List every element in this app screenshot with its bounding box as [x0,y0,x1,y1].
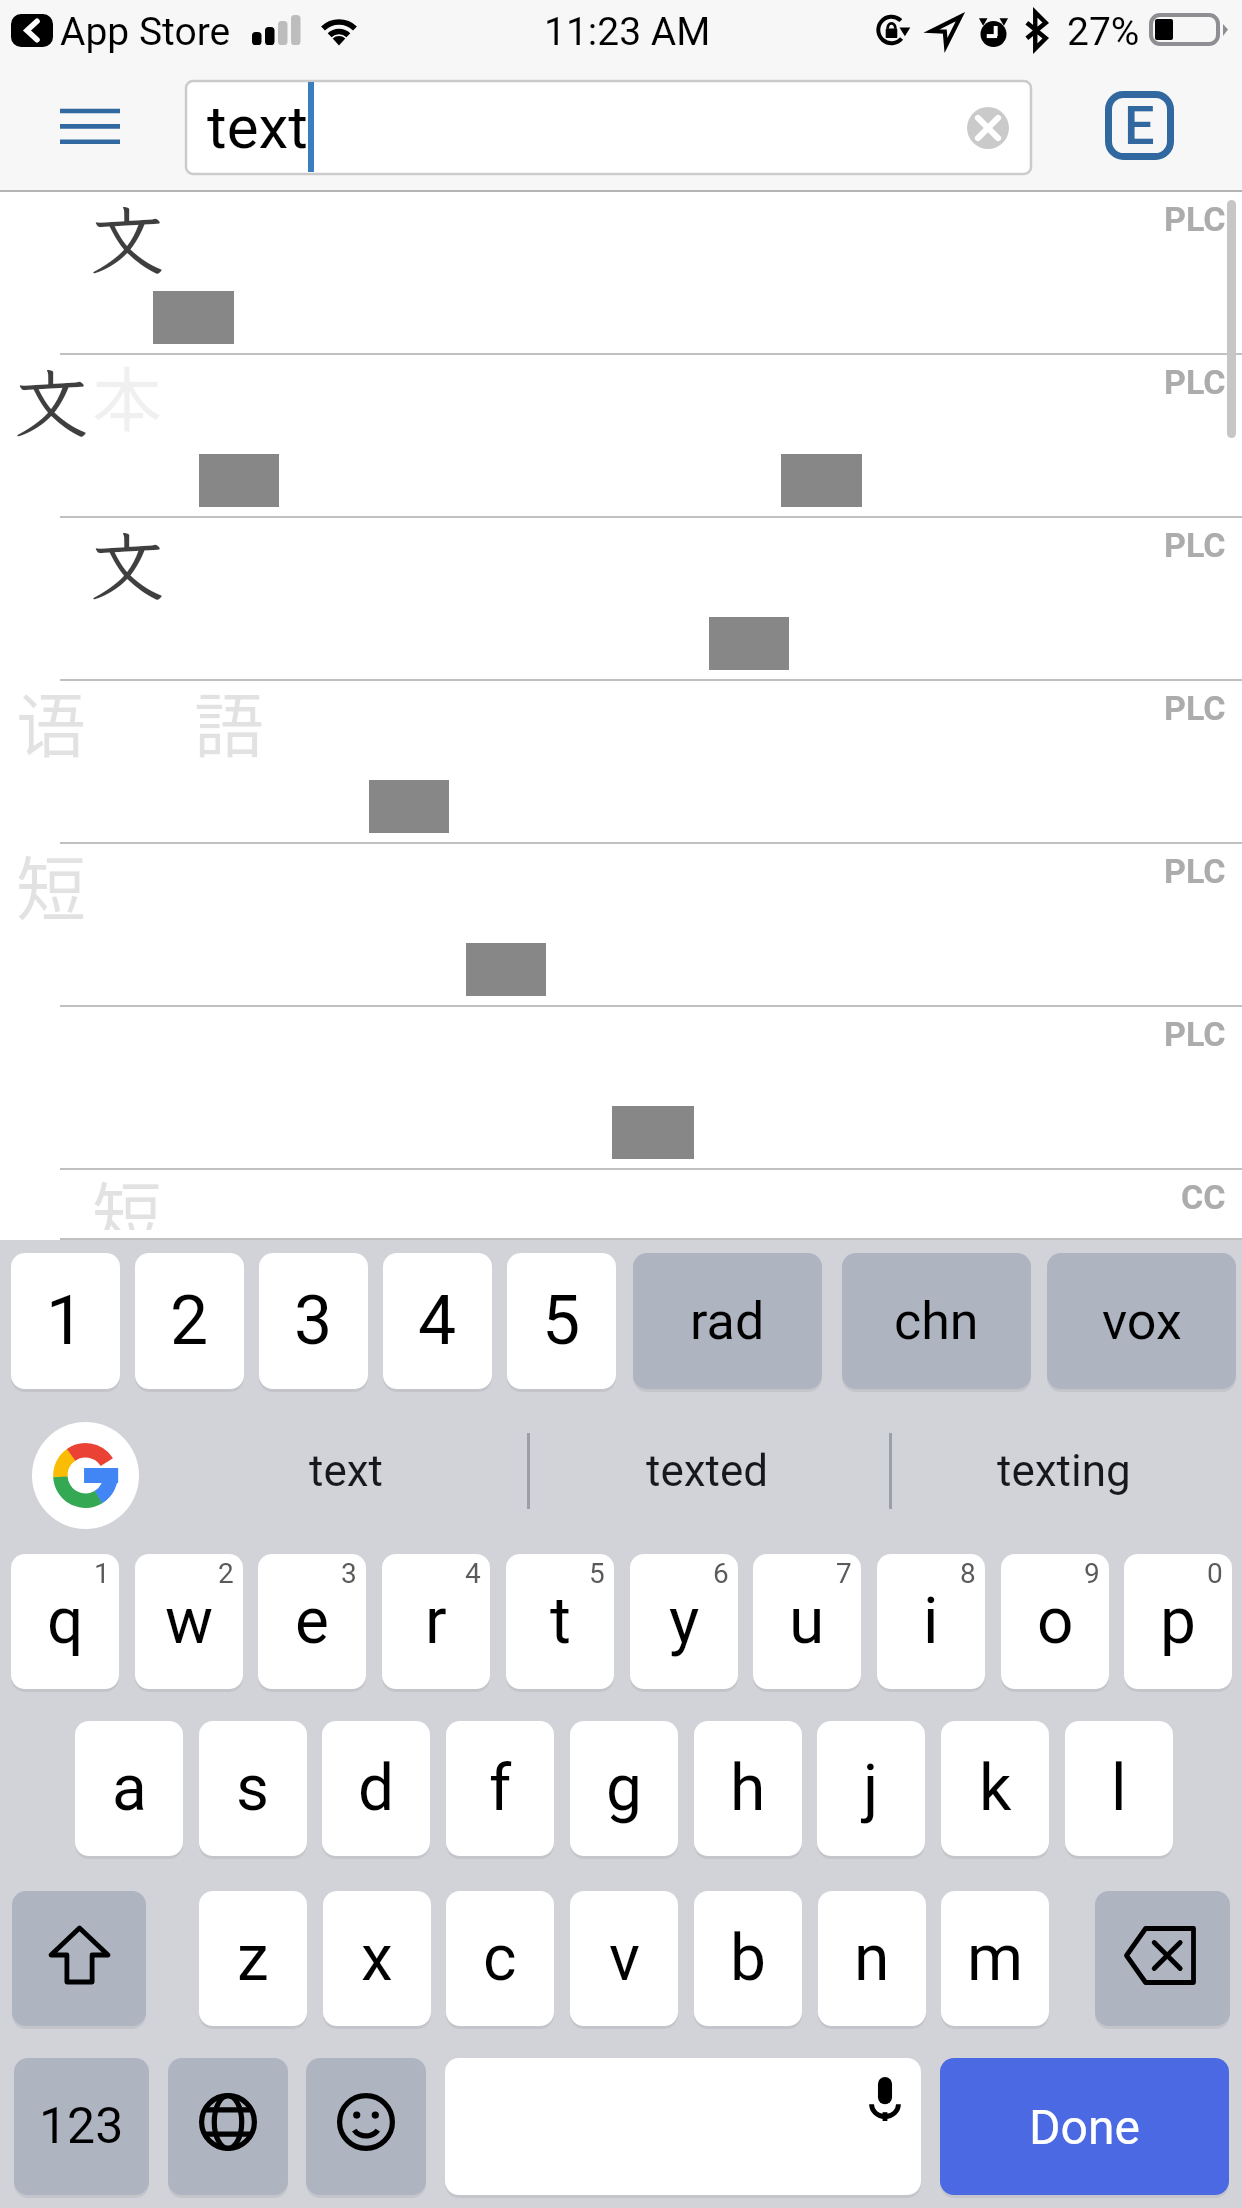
button[interactable]: l [1065,1721,1173,1856]
staticText: 5 [542,1281,581,1361]
button[interactable]: r [382,1554,490,1689]
button[interactable]: Space [445,2058,921,2195]
button[interactable]: s [199,1721,307,1856]
button[interactable]: texting [892,1425,1236,1517]
button[interactable]: f [446,1721,554,1856]
staticText: 9 [1084,1557,1100,1590]
button[interactable]: g [570,1721,678,1856]
button[interactable]: t [506,1554,614,1689]
staticText: k [979,1751,1012,1826]
button[interactable]: Menu [42,96,138,166]
staticText: rad [690,1291,765,1352]
button[interactable]: Emoji [306,2058,426,2195]
staticText: 5 [589,1557,605,1590]
staticText: w [165,1584,214,1659]
button[interactable]: chn [842,1253,1031,1389]
staticText: 2 [170,1281,209,1361]
staticText: Done [1029,2099,1140,2155]
staticText: a [112,1751,147,1826]
button[interactable]: 3 [259,1253,368,1389]
button[interactable]: English input mode [1105,91,1174,160]
staticText: 27% [1067,9,1140,55]
staticText: c [483,1921,517,1996]
button[interactable]: 5 [507,1253,616,1389]
staticText: u [789,1584,825,1659]
staticText: text [207,92,308,162]
staticText: 3 [294,1281,333,1361]
button[interactable]: 2 [135,1253,244,1389]
button[interactable]: w [135,1554,243,1689]
button[interactable]: 短 [0,844,1242,1007]
button[interactable]: 文 [0,518,1242,681]
staticText: 本 [92,345,162,446]
button[interactable]: a [75,1721,183,1856]
staticText: 语 [16,671,86,772]
button[interactable]: x [323,1891,431,2026]
button[interactable]: o [1001,1554,1109,1689]
button[interactable]: text [186,81,1031,174]
button[interactable]: 文 [0,355,1242,518]
staticText: 6 [713,1557,729,1590]
staticText: b [730,1921,766,1996]
staticText: 4 [418,1281,457,1361]
staticText: i [923,1584,939,1659]
staticText: text [309,1445,383,1497]
button[interactable]: 1 [11,1253,120,1389]
staticText: 文 [13,352,89,452]
button[interactable]: k [941,1721,1049,1856]
staticText: texted [646,1445,769,1497]
button[interactable]: Switch language [168,2058,288,2195]
staticText: PLC [1164,1014,1226,1054]
staticText: h [730,1751,766,1826]
staticText: 2 [218,1557,234,1590]
button[interactable]: vox [1047,1253,1236,1389]
staticText: x [361,1921,393,1996]
staticText: PLC [1164,688,1226,728]
button[interactable]: 文 [0,192,1242,355]
button[interactable]: n [818,1891,926,2026]
button[interactable]: i [877,1554,985,1689]
button[interactable]: m [941,1891,1049,2026]
button[interactable]: Google search [32,1422,139,1529]
staticText: z [237,1921,269,1996]
button[interactable]: 短 [0,1170,1242,1240]
button[interactable]: texted [529,1425,885,1517]
button[interactable]: text [161,1425,531,1517]
button[interactable]: Done [940,2058,1229,2195]
button[interactable]: Clear text [967,107,1009,149]
button[interactable]: y [630,1554,738,1689]
button[interactable]: Backspace [1095,1891,1230,2026]
staticText: s [236,1751,270,1826]
button[interactable]: d [322,1721,430,1856]
staticText: PLC [1164,199,1226,239]
staticText: 1 [46,1281,85,1361]
button[interactable]: c [446,1891,554,2026]
button[interactable]: u [753,1554,861,1689]
button[interactable]: j [817,1721,925,1856]
staticText: 7 [836,1557,852,1590]
staticText: 8 [960,1557,976,1590]
staticText: p [1160,1584,1196,1659]
staticText: q [47,1584,84,1659]
button[interactable]: PLC [0,1007,1242,1170]
staticText: 4 [465,1557,481,1590]
button[interactable]: 4 [383,1253,492,1389]
staticText: 短 [92,1160,162,1230]
button[interactable]: z [199,1891,307,2026]
staticText: o [1037,1584,1074,1659]
button[interactable]: v [570,1891,678,2026]
button[interactable]: e [258,1554,366,1689]
button[interactable]: p [1124,1554,1232,1689]
button[interactable]: h [694,1721,802,1856]
button[interactable]: rad [633,1253,822,1389]
staticText: 0 [1207,1557,1223,1590]
staticText: PLC [1164,525,1226,565]
button[interactable]: q [11,1554,119,1689]
staticText: f [489,1751,512,1826]
button[interactable]: Back to App Store [11,14,53,47]
staticText: v [609,1921,640,1996]
button[interactable]: Shift [12,1891,146,2026]
button[interactable]: b [694,1891,802,2026]
button[interactable]: 123 [14,2058,149,2195]
button[interactable]: 语 [0,681,1242,844]
